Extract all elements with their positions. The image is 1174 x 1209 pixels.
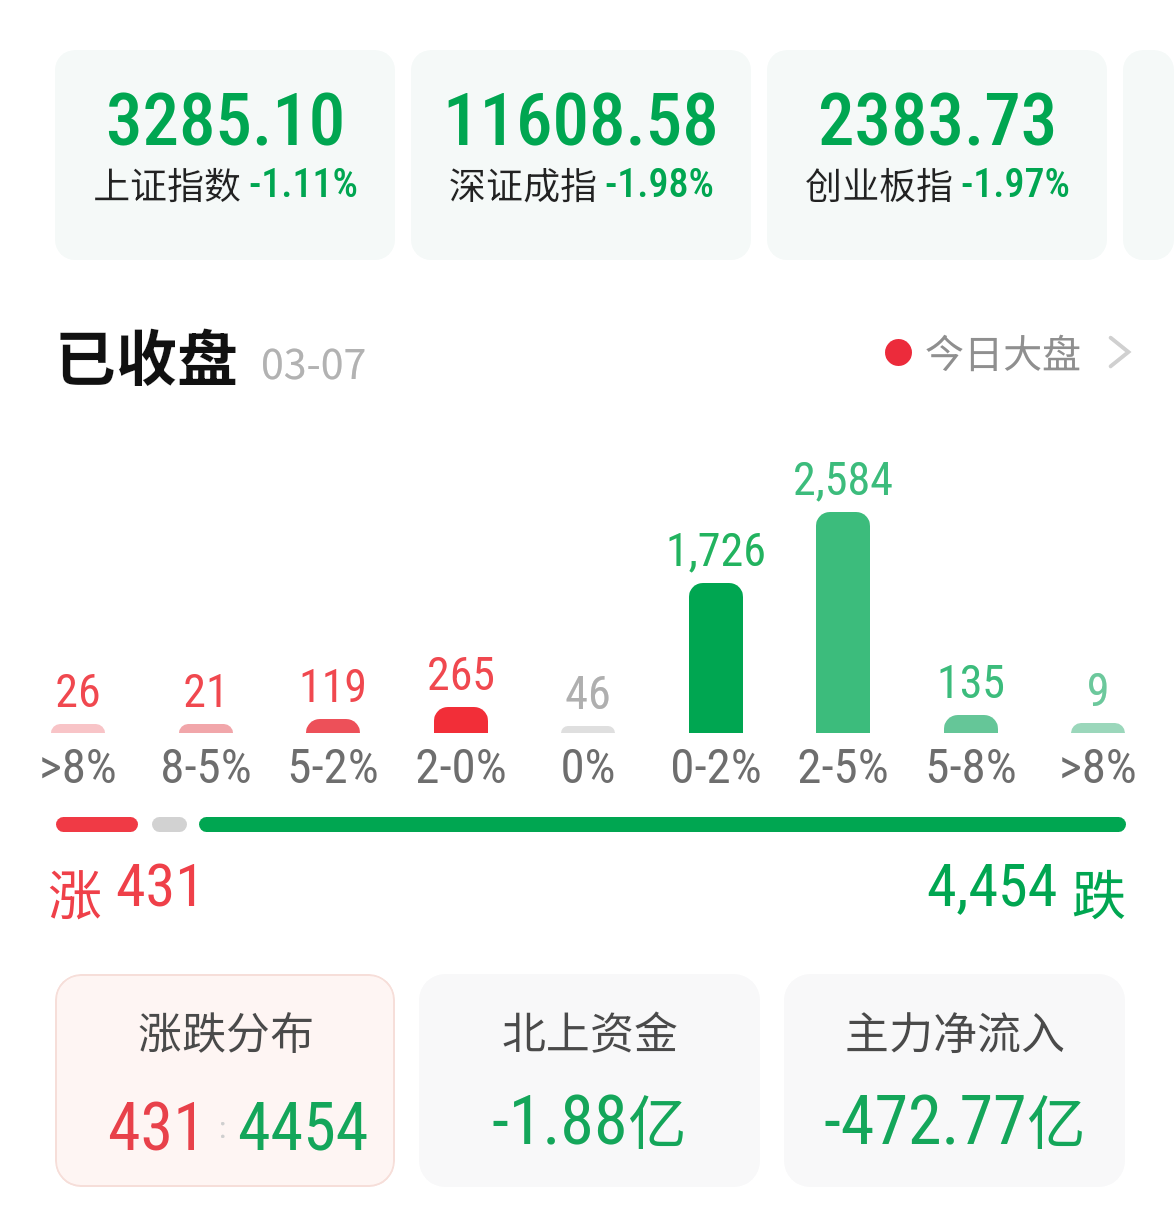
button[interactable]: 北上资金	[419, 974, 760, 1187]
staticText: 135	[907, 655, 1035, 709]
staticText: 2-0%	[397, 738, 525, 795]
staticText: 0%	[524, 738, 652, 795]
staticText: 涨	[48, 852, 102, 922]
staticText: 3285.10	[106, 77, 346, 163]
button[interactable]: 11608.58	[411, 50, 751, 260]
staticText: -1.97%	[961, 160, 1070, 207]
staticText: 4,454	[927, 850, 1058, 920]
staticText: 已收盘	[55, 310, 239, 394]
staticText: 亿	[1027, 1077, 1086, 1161]
staticText: 8-5%	[142, 738, 270, 795]
staticText: 03-07	[261, 331, 367, 390]
staticText: 0-2%	[652, 738, 780, 795]
staticText: 上证指数	[93, 156, 241, 210]
staticText: 2-5%	[779, 738, 907, 795]
staticText: 9	[1034, 663, 1162, 717]
staticText: 21	[142, 664, 270, 718]
staticText: 4454	[238, 1089, 369, 1166]
staticText: 创业板指	[805, 156, 953, 210]
staticText: 今日大盘	[925, 323, 1082, 379]
staticText: 431	[108, 1089, 206, 1166]
staticText: 北上资金	[502, 998, 678, 1062]
staticText: >8%	[14, 738, 142, 795]
staticText: 跌	[1072, 852, 1126, 922]
staticText: 2383.73	[818, 77, 1058, 163]
button[interactable]: 涨跌分布	[55, 974, 395, 1187]
staticText: 亿	[628, 1077, 687, 1161]
staticText: -472.77	[824, 1081, 1027, 1161]
staticText: 119	[269, 659, 397, 713]
button[interactable]: 主力净流入	[784, 974, 1125, 1187]
staticText: >8%	[1034, 738, 1162, 795]
staticText: 1,726	[652, 523, 780, 577]
staticText: 265	[397, 647, 525, 701]
other: Open market overview	[1106, 332, 1132, 372]
button[interactable]: 今日大盘	[885, 324, 1132, 380]
staticText: 5-2%	[269, 738, 397, 795]
staticText: 431	[116, 850, 205, 920]
staticText: -1.11%	[249, 160, 358, 207]
staticText: -1.98%	[605, 160, 714, 207]
staticText: 涨跌分布	[138, 998, 314, 1062]
staticText: 5-8%	[907, 738, 1035, 795]
staticText: 2,584	[779, 452, 907, 506]
staticText: 46	[524, 666, 652, 720]
staticText: 11608.58	[443, 77, 719, 163]
button[interactable]: 2383.73	[767, 50, 1107, 260]
staticText: -1.88	[492, 1081, 628, 1161]
staticText: :	[219, 1110, 227, 1145]
staticText: 深证成指	[449, 156, 597, 210]
button[interactable]: 3285.10	[55, 50, 395, 260]
staticText: 26	[14, 664, 142, 718]
staticText: 主力净流入	[845, 998, 1065, 1062]
